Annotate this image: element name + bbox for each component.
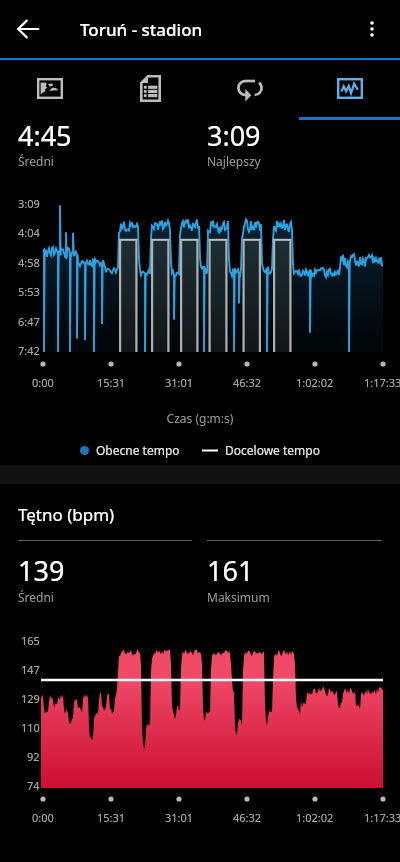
button[interactable]: More options (344, 1, 400, 57)
staticText: 161 (207, 552, 254, 589)
staticText: 92 (27, 749, 40, 764)
staticText: 31:01 (165, 375, 194, 390)
staticText: 3:09 (207, 117, 261, 154)
staticText: Toruń - stadion (80, 18, 203, 41)
staticText: 6:47 (18, 314, 40, 329)
staticText: Średni (18, 153, 54, 169)
staticText: Średni (18, 589, 54, 605)
staticText: 46:32 (233, 375, 262, 390)
staticText: 15:31 (97, 810, 126, 825)
staticText: 7:42 (18, 343, 40, 358)
staticText: 139 (18, 552, 65, 589)
staticText: 0:00 (32, 810, 54, 825)
button[interactable]: Charts (300, 60, 400, 117)
staticText: 147 (21, 662, 40, 677)
staticText: 5:53 (18, 284, 40, 299)
staticText: 165 (21, 633, 40, 648)
staticText: 110 (21, 720, 40, 735)
button[interactable]: Map (0, 60, 100, 117)
staticText: 4:45 (18, 117, 72, 154)
staticText: 4:04 (18, 225, 40, 240)
staticText: Docelowe tempo (225, 442, 320, 458)
button[interactable]: Back (0, 1, 56, 57)
staticText: 31:01 (165, 810, 194, 825)
staticText: Obecne tempo (96, 442, 180, 458)
staticText: Najlepszy (207, 153, 261, 169)
staticText: 3:09 (18, 196, 40, 211)
staticText: 46:32 (233, 810, 262, 825)
staticText: 1:17:33 (364, 810, 400, 825)
staticText: Tętno (bpm) (18, 503, 115, 526)
staticText: Maksimum (207, 589, 270, 605)
staticText: 4:58 (18, 255, 40, 270)
button[interactable]: Details (100, 60, 200, 117)
staticText: 74 (27, 778, 40, 793)
staticText: 129 (21, 691, 40, 706)
staticText: 15:31 (97, 375, 126, 390)
staticText: Czas (g:m:s) (0, 410, 400, 426)
button[interactable]: Laps (200, 60, 300, 117)
staticText: 1:02:02 (296, 810, 334, 825)
staticText: 0:00 (32, 375, 54, 390)
staticText: 1:02:02 (296, 375, 334, 390)
staticText: 1:17:33 (364, 375, 400, 390)
